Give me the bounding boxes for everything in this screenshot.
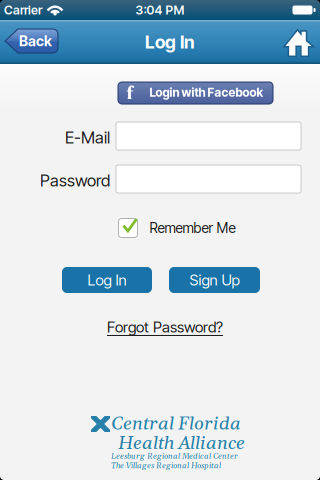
button[interactable]: Log In (62, 267, 152, 293)
staticText: The Villages Regional Hospital (111, 461, 221, 471)
staticText: Forgot Password? (107, 318, 223, 336)
staticText: Leesburg Regional Medical Center (111, 451, 238, 461)
button[interactable]: Forgot Password? (107, 318, 223, 336)
staticText: Carrier (4, 2, 42, 17)
button[interactable]: Back (5, 29, 58, 53)
staticText: Remember Me (149, 220, 235, 236)
staticText: E-Mail (65, 127, 110, 147)
staticText: Sign Up (189, 271, 239, 289)
button[interactable]: f (118, 82, 273, 104)
staticText: Health Alliance (118, 432, 245, 455)
staticText: f (126, 82, 133, 106)
staticText: Central Florida (111, 412, 241, 436)
staticText: Back (19, 32, 52, 50)
staticText: Login with Facebook (149, 85, 263, 100)
button[interactable]: Remember Me (118, 218, 235, 237)
staticText: Log In (87, 271, 126, 289)
staticText: Log In (145, 31, 195, 53)
button[interactable]: Home (285, 30, 311, 55)
staticText: 3:04 PM (135, 2, 184, 17)
staticText: Password (40, 170, 110, 190)
button[interactable]: Sign Up (169, 267, 260, 293)
